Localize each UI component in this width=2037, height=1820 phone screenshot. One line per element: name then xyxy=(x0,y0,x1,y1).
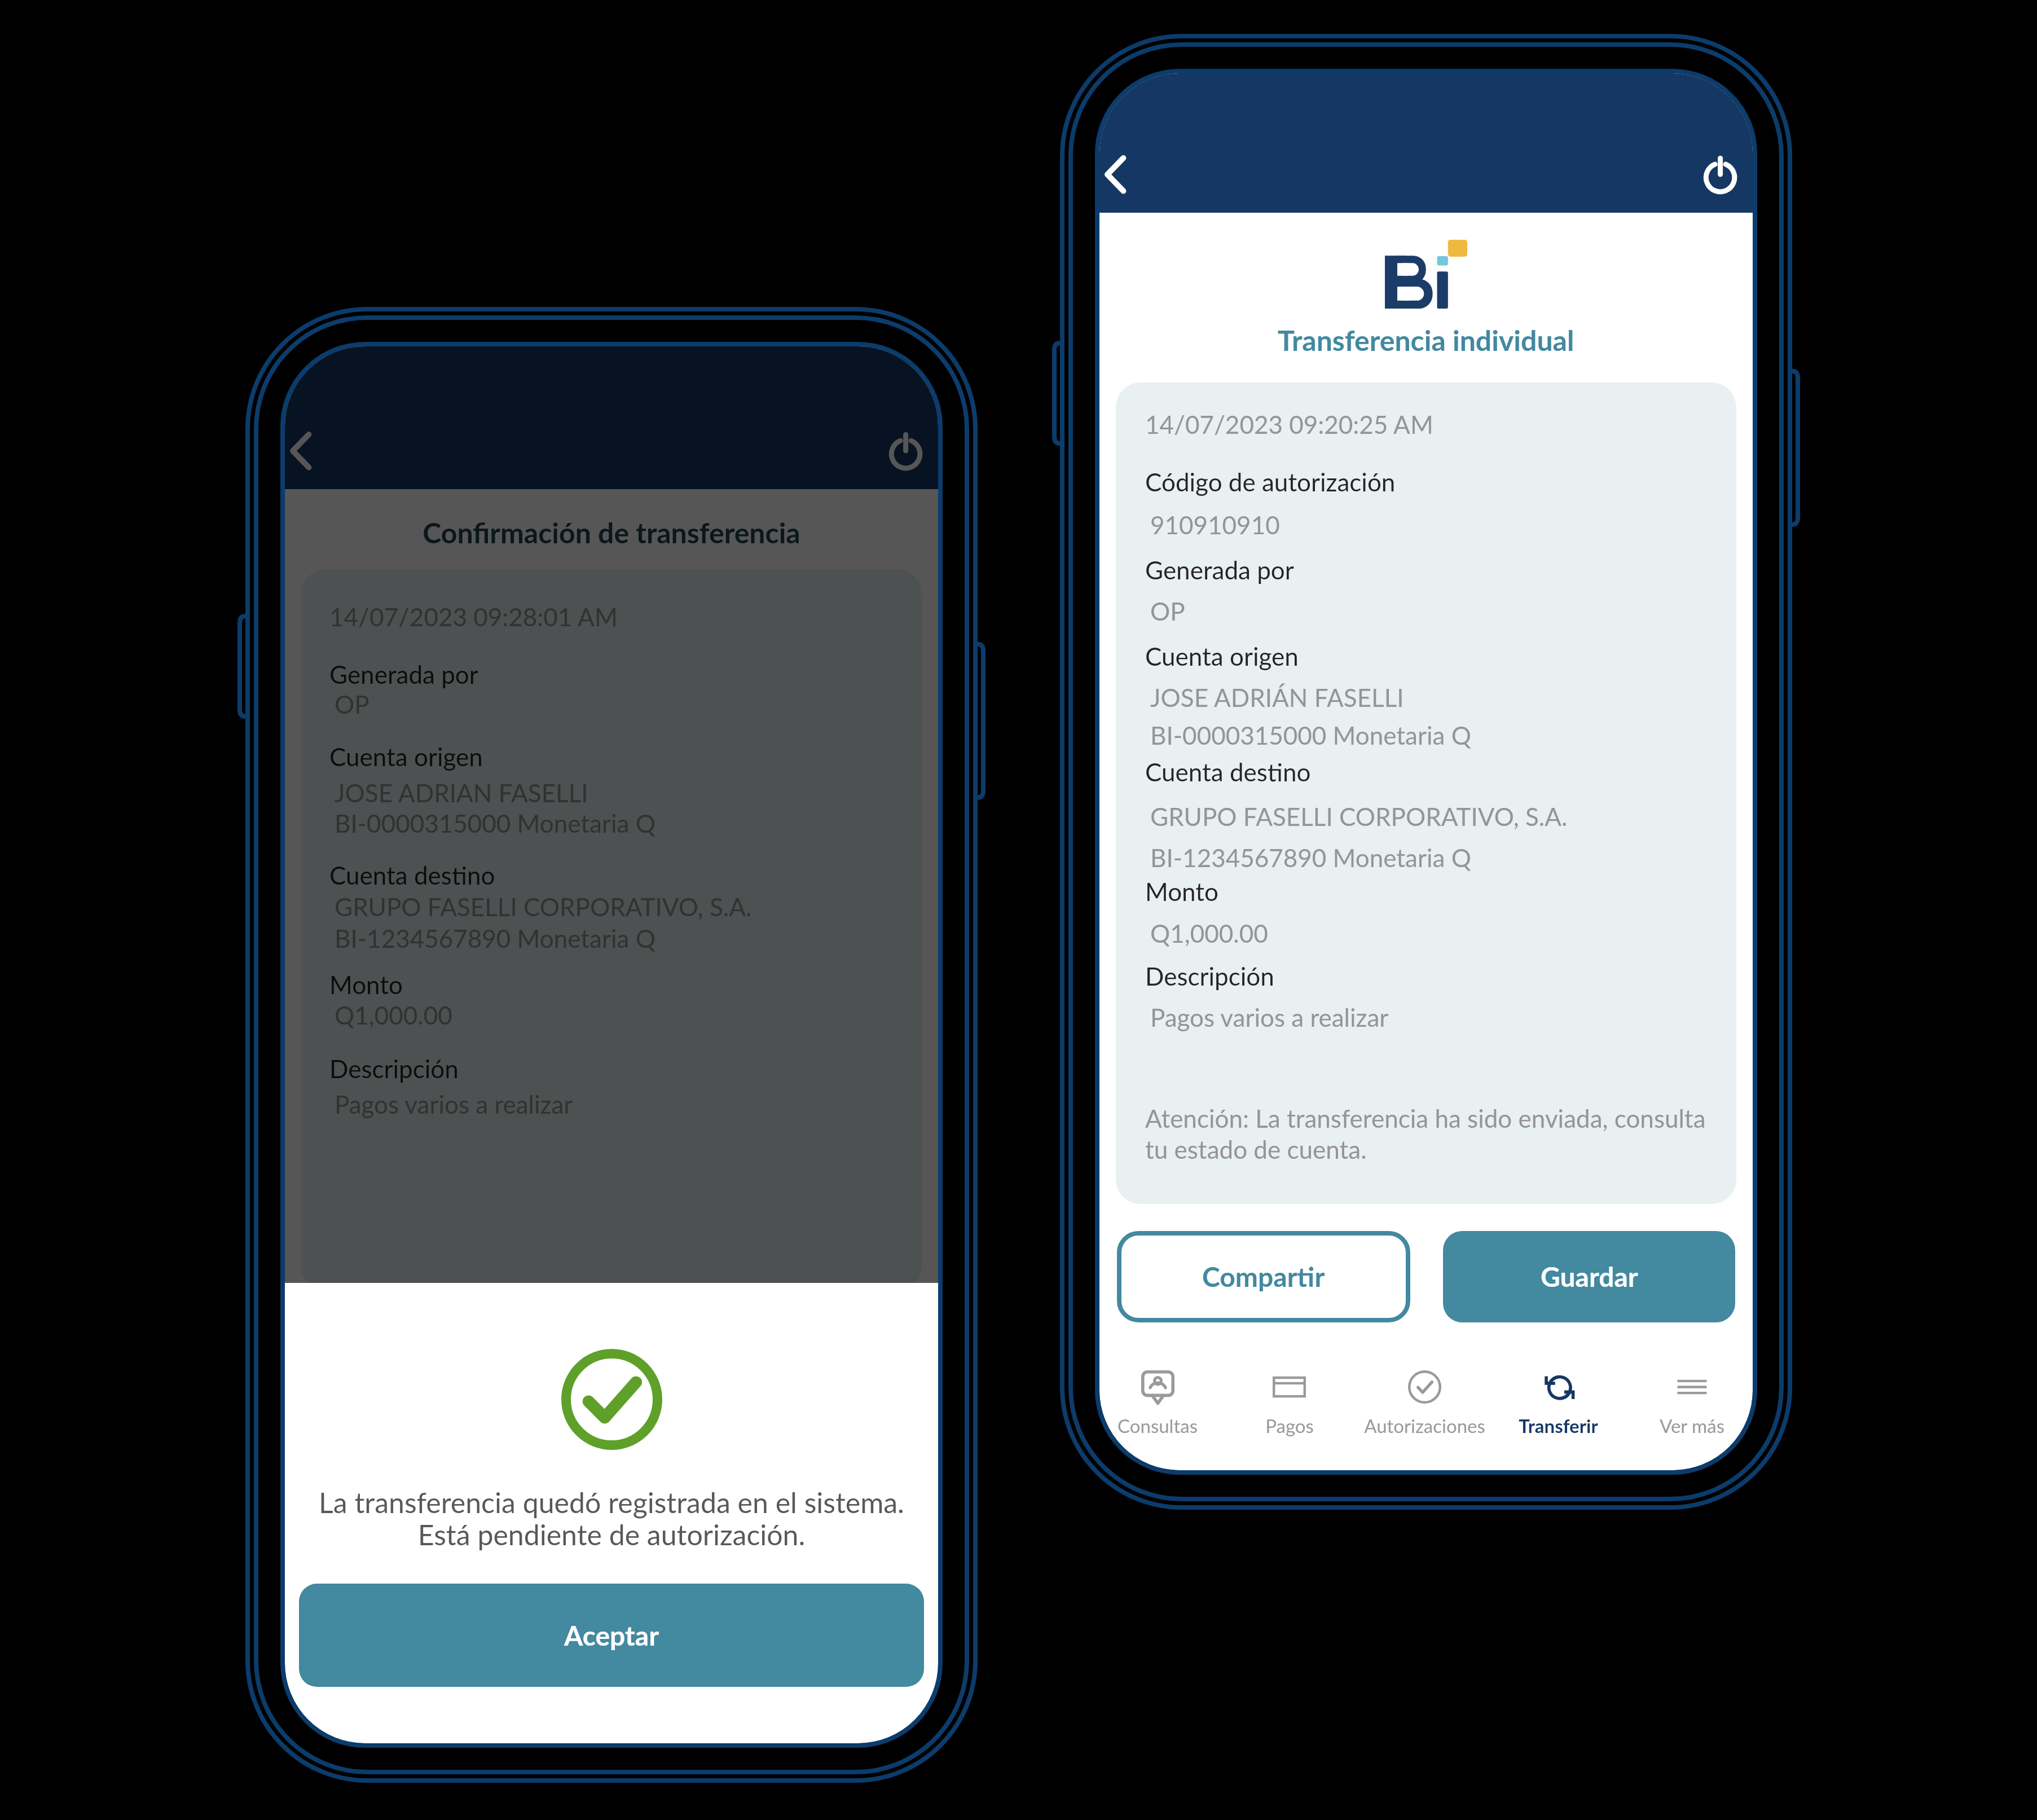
staticText: Ver más xyxy=(1660,1414,1724,1437)
staticText: Q1,000.00 xyxy=(335,1000,452,1030)
staticText: JOSE ADRIAN FASELLI xyxy=(335,778,588,808)
button[interactable]: Transferir xyxy=(1486,1370,1631,1437)
staticText: GRUPO FASELLI CORPORATIVO, S.A. xyxy=(1150,802,1568,832)
button[interactable]: Aceptar xyxy=(299,1584,924,1687)
staticText: 14/07/2023 09:20:25 AM xyxy=(1145,410,1433,439)
staticText: OP xyxy=(1150,596,1185,626)
staticText: La transferencia quedó registrada en el … xyxy=(285,1485,938,1551)
button[interactable]: Compartir xyxy=(1117,1231,1410,1322)
staticText: OP xyxy=(335,689,369,717)
button[interactable]: Ver más xyxy=(1631,1370,1753,1437)
staticText: Aceptar xyxy=(564,1619,659,1652)
staticText: Monto xyxy=(329,970,403,1000)
button[interactable]: Autorizaciones xyxy=(1363,1370,1486,1437)
staticText: Pagos varios a realizar xyxy=(335,1089,573,1119)
staticText: Compartir xyxy=(1202,1260,1325,1293)
staticText: Cuenta origen xyxy=(1145,641,1299,671)
staticText: BI-0000315000 Monetaria Q xyxy=(1150,720,1471,750)
staticText: Cuenta origen xyxy=(329,742,483,772)
staticText: Transferencia individual xyxy=(1278,323,1574,357)
staticText: Atención: La transferencia ha sido envia… xyxy=(1145,1104,1716,1164)
staticText: JOSE ADRIÁN FASELLI xyxy=(1150,683,1404,713)
staticText: Confirmación de transferencia xyxy=(285,516,938,549)
button[interactable]: Log out xyxy=(877,422,929,474)
button[interactable]: Back xyxy=(1102,144,1156,199)
staticText: Transferir xyxy=(1519,1414,1598,1437)
staticText: Cuenta destino xyxy=(329,860,495,890)
staticText: Pagos xyxy=(1265,1414,1314,1437)
staticText: Monto xyxy=(1145,877,1218,907)
staticText: 910910910 xyxy=(1150,510,1280,540)
staticText: Cuenta destino xyxy=(1145,757,1311,787)
staticText: Generada por xyxy=(1145,555,1294,585)
staticText: GRUPO FASELLI CORPORATIVO, S.A. xyxy=(335,892,752,922)
staticText: BI-1234567890 Monetaria Q xyxy=(1150,843,1471,873)
staticText: Descripción xyxy=(1145,961,1274,991)
staticText: Consultas xyxy=(1118,1414,1198,1437)
staticText: Autorizaciones xyxy=(1364,1414,1485,1437)
staticText: Generada por xyxy=(329,660,478,689)
button[interactable]: Pagos xyxy=(1216,1370,1363,1437)
button[interactable]: Consultas xyxy=(1099,1370,1216,1437)
staticText: Descripción xyxy=(329,1054,459,1084)
staticText: 14/07/2023 09:28:01 AM xyxy=(329,602,618,632)
button[interactable]: Guardar xyxy=(1443,1231,1735,1322)
button[interactable]: Log out xyxy=(1692,146,1744,197)
staticText: BI-1234567890 Monetaria Q xyxy=(335,924,655,953)
staticText: Q1,000.00 xyxy=(1150,918,1268,948)
staticText: Guardar xyxy=(1541,1260,1638,1293)
staticText: BI-0000315000 Monetaria Q xyxy=(335,808,655,838)
button[interactable]: Back xyxy=(287,421,341,475)
staticText: Pagos varios a realizar xyxy=(1150,1003,1389,1032)
staticText: Código de autorización xyxy=(1145,467,1396,497)
